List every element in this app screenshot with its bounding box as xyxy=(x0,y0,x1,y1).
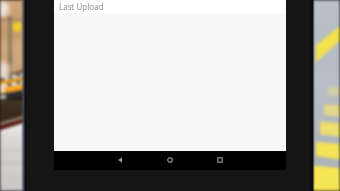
staticText: Last Upload xyxy=(59,1,104,12)
button[interactable]: Home xyxy=(162,152,178,168)
button[interactable]: Recents xyxy=(212,152,228,168)
button[interactable]: Back xyxy=(112,152,128,168)
